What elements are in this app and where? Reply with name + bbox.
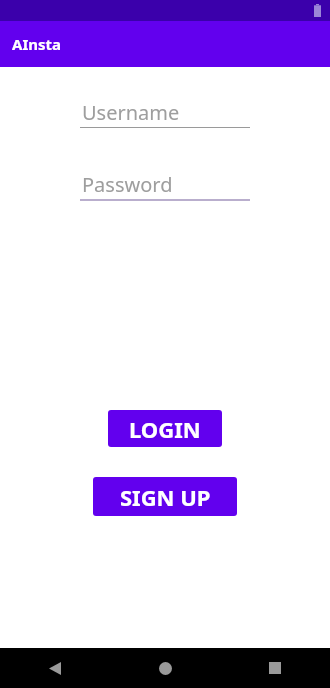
- button[interactable]: SIGN UP: [93, 477, 237, 516]
- staticText: AInsta: [12, 34, 61, 54]
- button[interactable]: Back: [0, 648, 110, 688]
- button[interactable]: Password: [80, 170, 250, 201]
- staticText: Username: [82, 99, 180, 126]
- staticText: SIGN UP: [120, 482, 211, 512]
- staticText: Password: [82, 171, 173, 198]
- button[interactable]: Username: [80, 98, 250, 128]
- button[interactable]: Home: [110, 648, 220, 688]
- button[interactable]: LOGIN: [108, 410, 222, 447]
- button[interactable]: Recent apps: [220, 648, 330, 688]
- staticText: LOGIN: [129, 414, 201, 444]
